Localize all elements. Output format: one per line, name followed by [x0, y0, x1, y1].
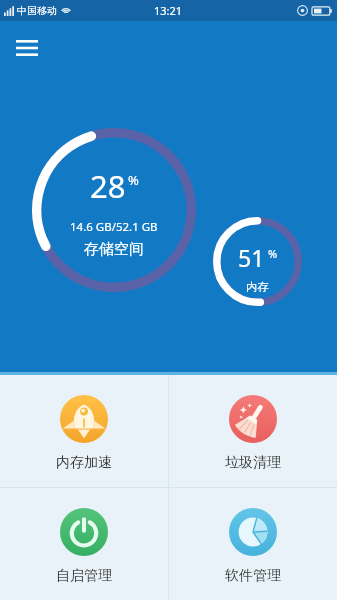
staticText: 28 — [90, 165, 126, 207]
staticText: 14.6 GB/52.1 GB — [70, 219, 158, 235]
staticText: 内存加速 — [56, 454, 112, 472]
staticText: % — [268, 246, 278, 261]
button[interactable]: Menu — [10, 31, 44, 65]
button[interactable]: 垃圾清理 — [169, 375, 337, 487]
staticText: % — [128, 171, 139, 189]
staticText: 内存 — [246, 280, 269, 294]
staticText: 中国移动 — [17, 4, 57, 17]
button[interactable]: 自启管理 — [0, 488, 168, 600]
staticText: 存储空间 — [84, 240, 144, 259]
staticText: 13:21 — [154, 3, 183, 18]
staticText: 软件管理 — [225, 567, 281, 585]
staticText: 51 — [238, 242, 265, 273]
button[interactable]: 软件管理 — [169, 488, 337, 600]
staticText: 垃圾清理 — [225, 454, 281, 472]
button[interactable]: 内存加速 — [0, 375, 168, 487]
staticText: 自启管理 — [56, 567, 112, 585]
